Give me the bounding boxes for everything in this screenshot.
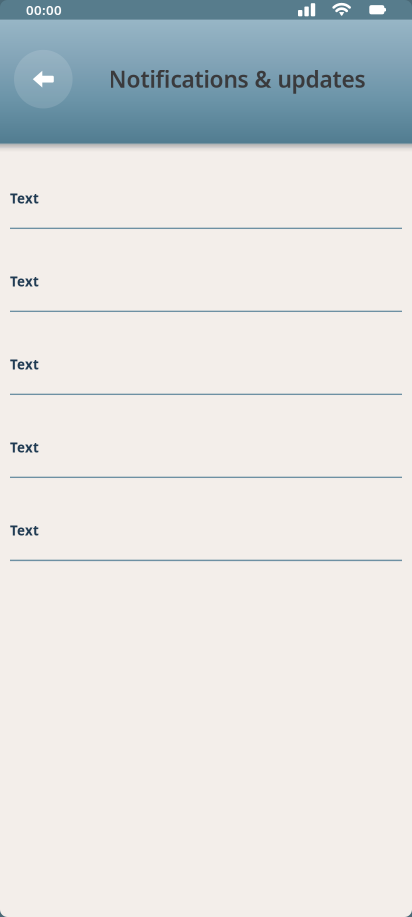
button[interactable]: Text: [0, 478, 412, 561]
button[interactable]: Text: [0, 395, 412, 478]
staticText: Text: [10, 521, 39, 539]
staticText: Text: [10, 272, 39, 290]
staticText: Text: [10, 355, 39, 373]
staticText: Text: [10, 189, 39, 207]
staticText: Notifications & updates: [108, 64, 365, 94]
button[interactable]: Back: [14, 50, 73, 108]
button[interactable]: Text: [0, 312, 412, 395]
button[interactable]: Text: [0, 229, 412, 312]
button[interactable]: Text: [0, 146, 412, 229]
staticText: Text: [10, 438, 39, 456]
staticText: 00:00: [26, 1, 62, 19]
